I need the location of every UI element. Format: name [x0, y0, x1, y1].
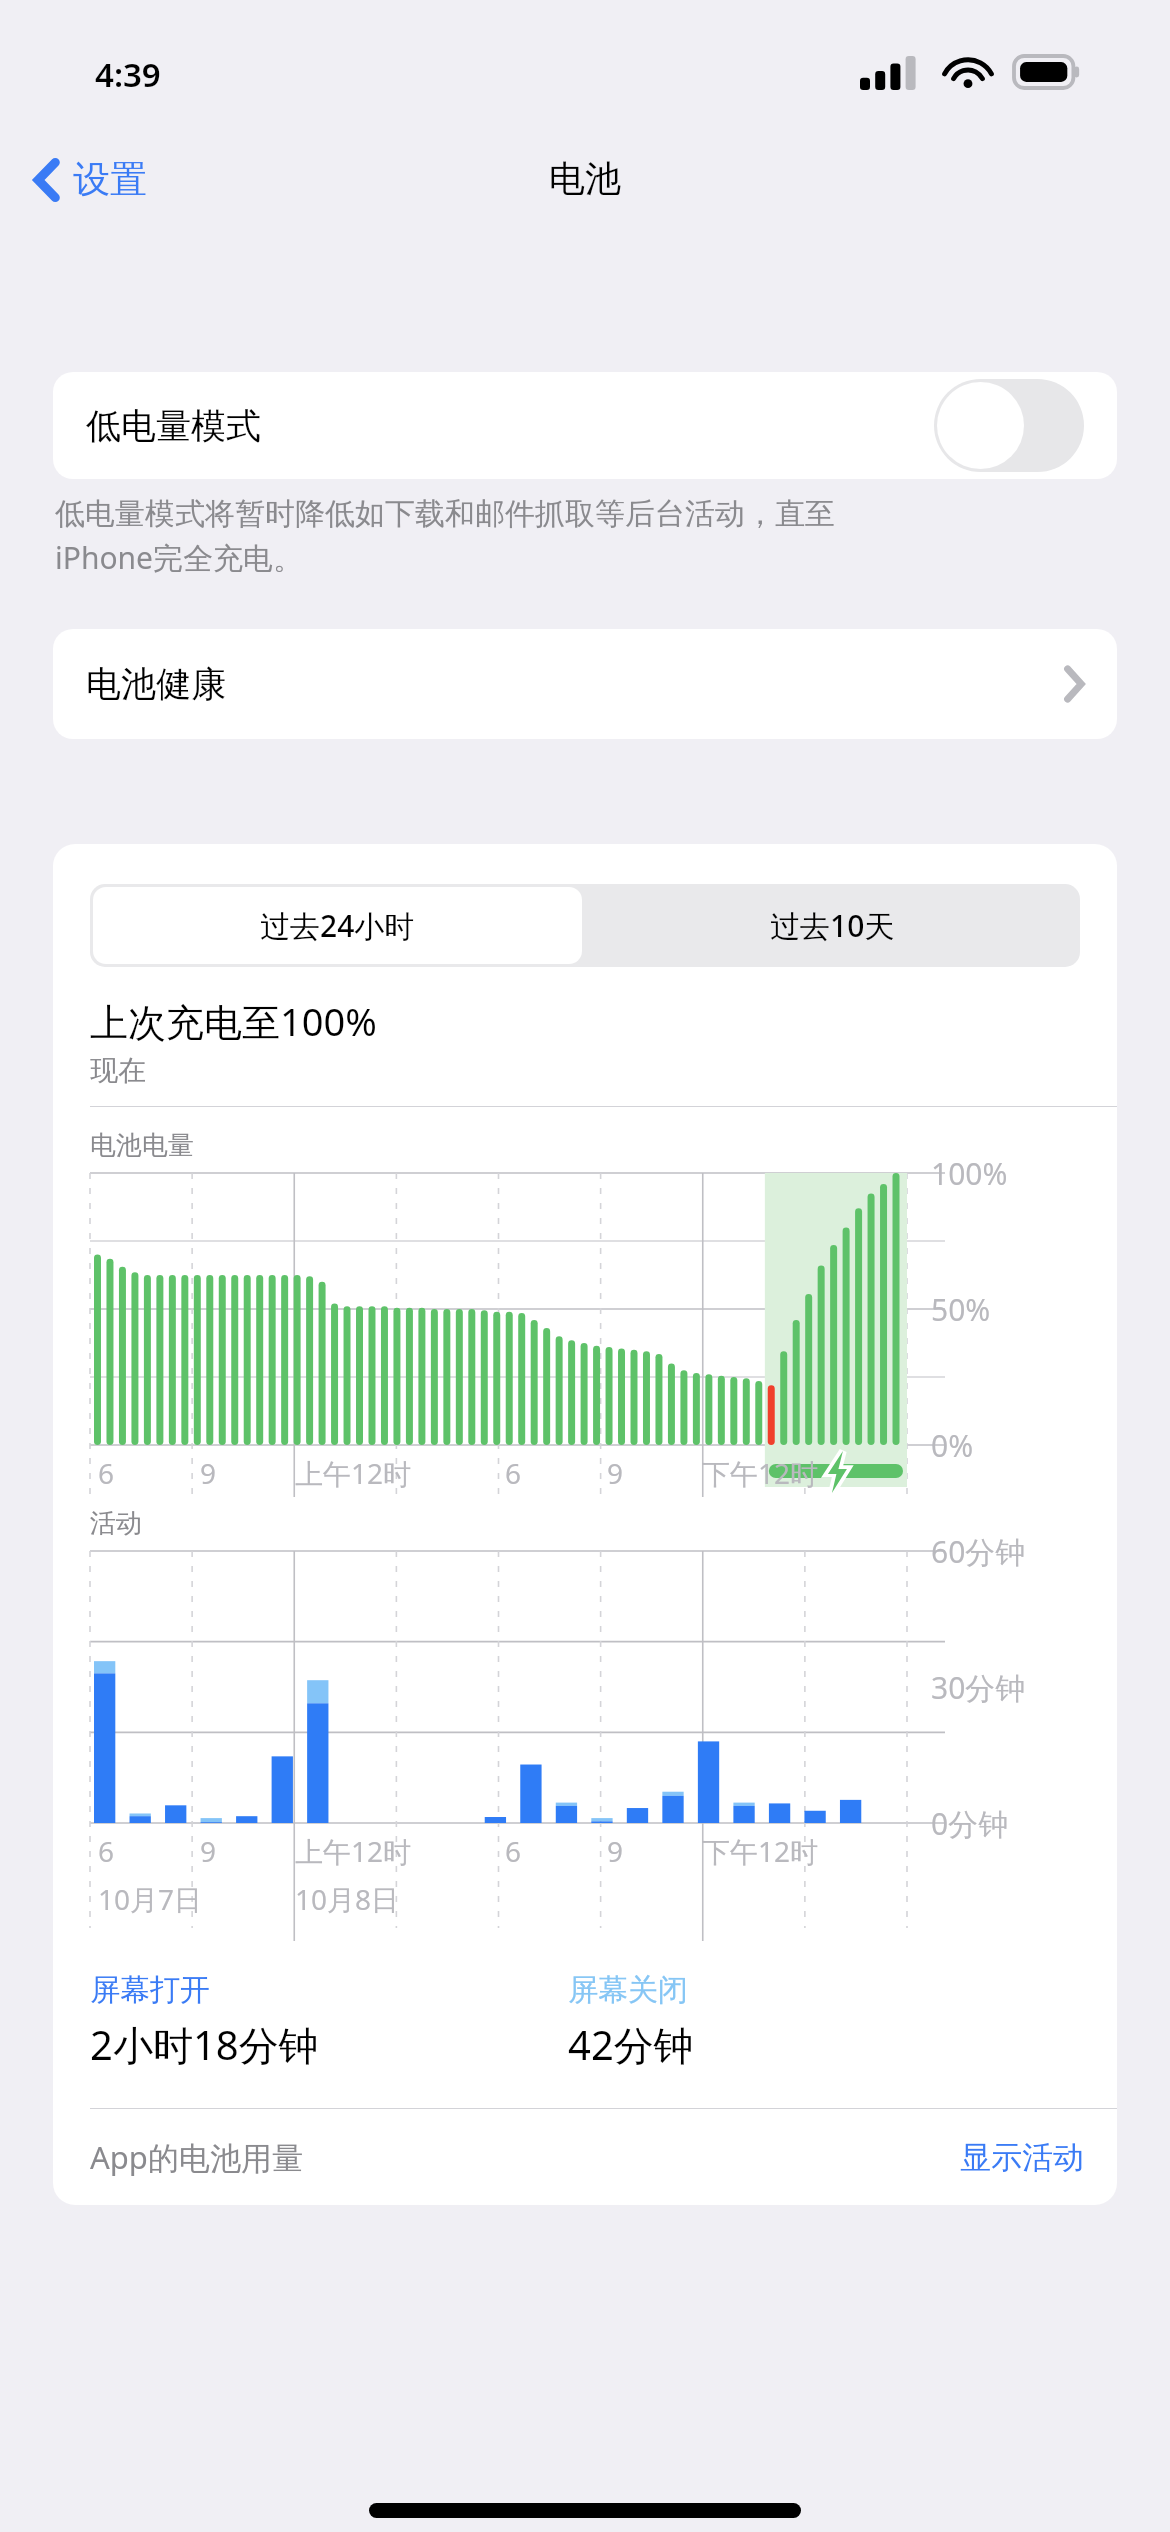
staticText: 0% [931, 1425, 974, 1466]
staticText: 9 [200, 1832, 217, 1870]
staticText: 屏幕打开 [90, 1971, 210, 2009]
button[interactable]: 显示活动 [960, 2138, 1084, 2177]
staticText: 60分钟 [931, 1531, 1026, 1572]
button[interactable]: 低电量模式 [53, 372, 1117, 479]
staticText: 4:39 [95, 52, 161, 97]
staticText: 下午12时 [702, 1454, 819, 1492]
staticText: 0分钟 [931, 1803, 1009, 1844]
staticText: 活动 [90, 1507, 142, 1540]
staticText: 6 [98, 1454, 115, 1492]
staticText: 2小时18分钟 [90, 2017, 319, 2072]
staticText: 9 [607, 1454, 624, 1492]
button[interactable]: 屏幕关闭 [568, 1971, 1117, 2072]
staticText: 低电量模式 [86, 404, 261, 448]
staticText: 上午12时 [295, 1832, 412, 1870]
staticText: 现在 [90, 1053, 146, 1088]
button[interactable]: 过去10天 [585, 884, 1080, 967]
staticText: 设置 [73, 156, 147, 203]
staticText: 6 [98, 1832, 115, 1870]
staticText: 过去10天 [770, 905, 895, 946]
button[interactable]: 设置 [26, 148, 155, 211]
staticText: 上午12时 [295, 1454, 412, 1492]
staticText: 10月7日 [98, 1880, 203, 1918]
staticText: 30分钟 [931, 1667, 1026, 1708]
staticText: 9 [200, 1454, 217, 1492]
button[interactable]: App的电池用量 [90, 2136, 303, 2178]
staticText: 上次充电至100% [90, 995, 377, 1047]
staticText: 10月8日 [295, 1880, 400, 1918]
button[interactable]: 低电量模式开关 [934, 379, 1084, 472]
staticText: 下午12时 [702, 1832, 819, 1870]
staticText: 50% [931, 1289, 991, 1330]
staticText: 电池电量 [90, 1129, 194, 1162]
staticText: 42分钟 [568, 2017, 694, 2072]
staticText: 屏幕关闭 [568, 1971, 688, 2009]
staticText: 过去24小时 [260, 905, 415, 946]
staticText: 6 [505, 1454, 522, 1492]
staticText: 9 [607, 1832, 624, 1870]
staticText: 100% [931, 1153, 1008, 1194]
staticText: 6 [505, 1832, 522, 1870]
staticText: 电池 [549, 156, 621, 201]
staticText: 低电量模式将暂时降低如下载和邮件抓取等后台活动，直至 iPhone完全充电。 [55, 495, 835, 578]
button[interactable]: 过去24小时 [93, 887, 582, 964]
button[interactable]: 屏幕打开 [90, 1971, 568, 2072]
button[interactable]: 电池健康 [53, 629, 1117, 739]
staticText: 电池健康 [86, 662, 226, 706]
